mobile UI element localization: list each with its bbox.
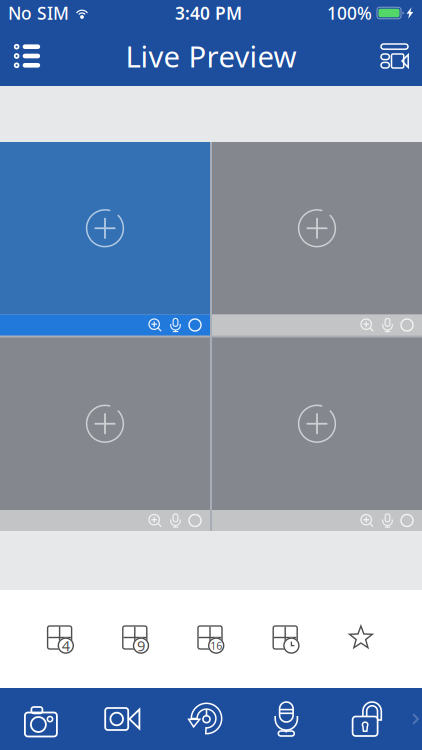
staticText: 100% <box>327 1 372 24</box>
button[interactable]: 16 channels <box>198 614 224 664</box>
button[interactable]: Talk <box>245 688 327 750</box>
button[interactable]: Layout <box>368 26 422 86</box>
staticText: 4 <box>62 636 70 655</box>
button[interactable]: More <box>409 688 422 750</box>
button[interactable]: 4 channels <box>48 614 74 664</box>
staticText: Live Preview <box>125 36 296 75</box>
staticText: 16 <box>210 638 222 653</box>
button[interactable]: Camera channel <box>0 337 210 531</box>
staticText: No SIM <box>8 1 69 24</box>
button[interactable]: Favorites <box>348 614 374 664</box>
button[interactable]: Sequence <box>273 614 299 664</box>
button[interactable]: Playback <box>164 688 245 750</box>
button[interactable]: 9 channels <box>123 614 149 664</box>
button[interactable]: Camera channel <box>212 337 422 531</box>
staticText: 3:40 PM <box>175 1 242 24</box>
button[interactable]: Camera channel <box>212 142 422 335</box>
button[interactable]: Snapshot <box>0 688 82 750</box>
staticText: 9 <box>137 636 145 655</box>
button[interactable]: Camera channel <box>0 142 210 335</box>
button[interactable]: Unlock <box>327 688 409 750</box>
button[interactable]: Camera list <box>0 26 54 86</box>
button[interactable]: Record <box>82 688 164 750</box>
